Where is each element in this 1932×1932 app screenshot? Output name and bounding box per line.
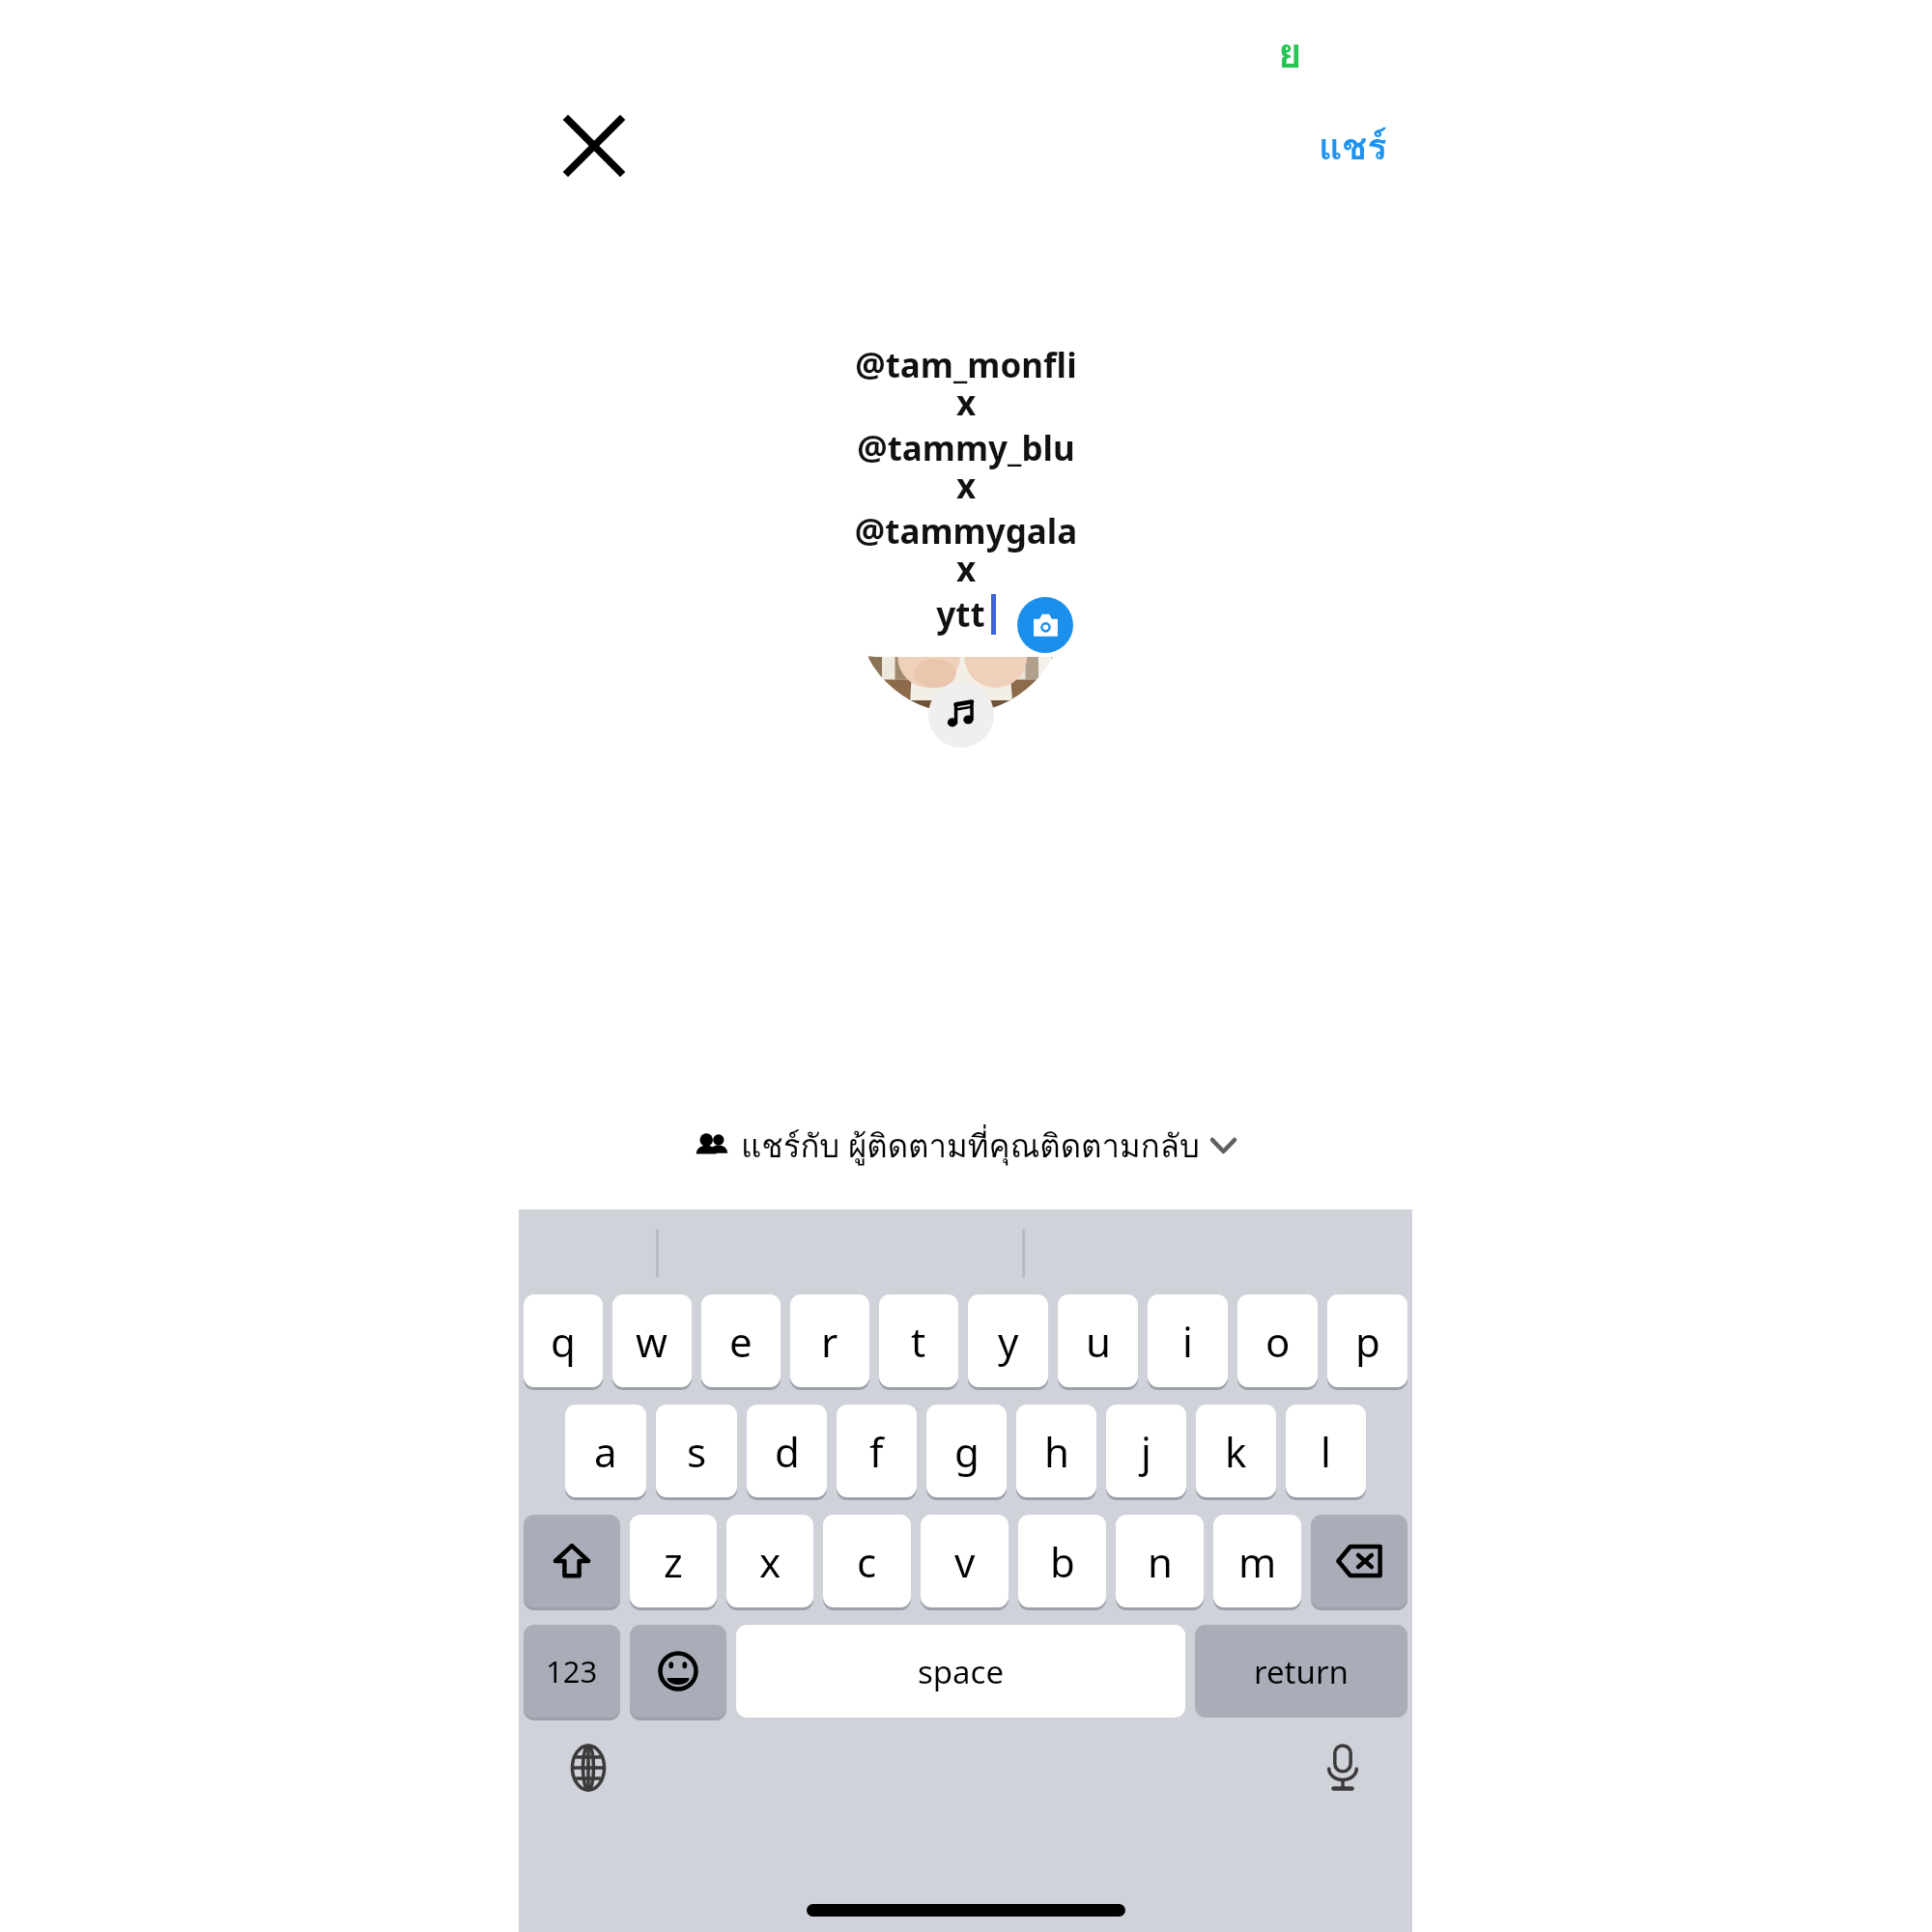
button[interactable]: Close — [549, 100, 639, 191]
button[interactable]: d — [747, 1405, 827, 1497]
staticText: f — [869, 1424, 884, 1479]
button[interactable]: i — [1148, 1294, 1228, 1387]
staticText: แชร์ — [1319, 117, 1387, 175]
staticText: y — [998, 1314, 1019, 1369]
button[interactable]: l — [1286, 1405, 1366, 1497]
staticText: o — [1265, 1314, 1291, 1369]
staticText: v — [954, 1534, 976, 1589]
button[interactable]: t — [879, 1294, 958, 1387]
button[interactable]: e — [701, 1294, 781, 1387]
button[interactable]: g — [926, 1405, 1007, 1497]
staticText: a — [594, 1424, 617, 1479]
staticText: n — [1148, 1534, 1173, 1589]
button[interactable]: h — [1016, 1405, 1096, 1497]
staticText: r — [821, 1314, 838, 1369]
button[interactable]: m — [1213, 1515, 1301, 1607]
button[interactable]: Emoji — [630, 1625, 726, 1718]
button[interactable]: x — [726, 1515, 813, 1607]
button[interactable]: Music — [928, 682, 994, 748]
staticText: g — [954, 1424, 980, 1479]
button[interactable]: Switch keyboard — [554, 1733, 623, 1803]
staticText: b — [1050, 1534, 1075, 1589]
button[interactable]: y — [968, 1294, 1048, 1387]
button[interactable]: Dictation — [1308, 1733, 1378, 1803]
button[interactable]: n — [1116, 1515, 1204, 1607]
button[interactable]: @tam_monflix — [840, 323, 1092, 657]
staticText: 123 — [546, 1651, 598, 1691]
staticText: s — [687, 1424, 707, 1479]
button[interactable]: w — [612, 1294, 692, 1387]
staticText: k — [1225, 1424, 1247, 1479]
staticText: return — [1254, 1650, 1349, 1693]
button[interactable]: f — [837, 1405, 917, 1497]
staticText: x — [759, 1534, 781, 1589]
button[interactable]: Backspace — [1311, 1515, 1407, 1607]
staticText: p — [1355, 1314, 1380, 1369]
staticText: e — [729, 1314, 753, 1369]
staticText: z — [664, 1534, 683, 1589]
button[interactable]: Change photo — [1017, 597, 1073, 653]
staticText: l — [1321, 1424, 1331, 1479]
button[interactable]: space — [736, 1625, 1185, 1718]
staticText: m — [1238, 1534, 1277, 1589]
button[interactable]: z — [630, 1515, 717, 1607]
button[interactable]: s — [656, 1405, 737, 1497]
button[interactable]: v — [921, 1515, 1009, 1607]
button[interactable]: Shift — [524, 1515, 620, 1607]
button[interactable]: k — [1196, 1405, 1276, 1497]
button[interactable]: return — [1195, 1625, 1407, 1718]
staticText: u — [1086, 1314, 1111, 1369]
staticText: space — [918, 1650, 1005, 1693]
button[interactable]: แชร์ — [1275, 100, 1430, 191]
button[interactable]: u — [1058, 1294, 1138, 1387]
staticText: j — [1141, 1424, 1151, 1479]
button[interactable]: a — [565, 1405, 646, 1497]
staticText: @tammygalax — [852, 508, 1080, 591]
button[interactable]: j — [1106, 1405, 1186, 1497]
staticText: h — [1044, 1424, 1069, 1479]
button[interactable]: r — [790, 1294, 869, 1387]
staticText: q — [551, 1314, 576, 1369]
staticText: c — [857, 1534, 877, 1589]
staticText: @tam_monflix — [852, 342, 1080, 425]
staticText: แชร์กับ ผู้ติดตามที่คุณติดตามกลับ — [741, 1121, 1200, 1171]
button[interactable]: c — [823, 1515, 911, 1607]
staticText: @tammy_blux — [852, 425, 1080, 508]
staticText: i — [1182, 1314, 1193, 1369]
staticText: ย — [1278, 21, 1302, 81]
button[interactable]: แชร์กับ ผู้ติดตามที่คุณติดตามกลับ — [682, 1111, 1250, 1180]
button[interactable]: o — [1237, 1294, 1318, 1387]
staticText: t — [911, 1314, 926, 1369]
button[interactable]: q — [524, 1294, 603, 1387]
staticText: ytt — [936, 591, 985, 638]
staticText: d — [775, 1424, 800, 1479]
button[interactable]: p — [1327, 1294, 1407, 1387]
button[interactable]: b — [1018, 1515, 1106, 1607]
button[interactable]: Numbers — [524, 1625, 620, 1718]
staticText: w — [636, 1314, 668, 1369]
